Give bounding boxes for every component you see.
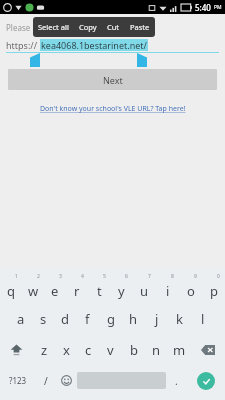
- button[interactable]: 7: [133, 274, 156, 304]
- button[interactable]: b: [122, 334, 145, 365]
- button[interactable]: Paste: [125, 18, 155, 36]
- staticText: Select all: [38, 22, 69, 32]
- staticText: q: [7, 282, 15, 300]
- button[interactable]: Shift: [0, 334, 33, 365]
- button[interactable]: Don't know your school's VLE URL? Tap he…: [38, 102, 188, 116]
- staticText: Please: [6, 22, 31, 33]
- staticText: t: [97, 282, 102, 300]
- staticText: l: [201, 310, 205, 328]
- staticText: Paste: [130, 22, 150, 32]
- staticText: a: [17, 310, 25, 328]
- staticText: z: [41, 341, 48, 359]
- staticText: v: [107, 341, 114, 359]
- staticText: https://: [6, 39, 38, 51]
- button[interactable]: h: [122, 304, 145, 334]
- staticText: 9: [194, 273, 197, 280]
- staticText: u: [140, 282, 149, 300]
- staticText: 3: [59, 273, 62, 280]
- staticText: w: [28, 282, 39, 300]
- button[interactable]: Select all: [33, 18, 74, 36]
- staticText: kea4068.1bestarinet.net/: [41, 39, 147, 51]
- staticText: Don't know your school's VLE URL? Tap he…: [40, 104, 186, 114]
- button[interactable]: c: [77, 334, 99, 365]
- button[interactable]: a: [10, 304, 32, 334]
- button[interactable]: Enter: [197, 372, 215, 390]
- staticText: n: [152, 341, 161, 359]
- button[interactable]: z: [33, 334, 55, 365]
- button[interactable]: d: [54, 304, 76, 334]
- button[interactable]: f: [76, 304, 99, 334]
- staticText: i: [166, 282, 170, 300]
- button[interactable]: l: [191, 304, 214, 334]
- staticText: 5: [103, 273, 106, 280]
- staticText: y: [118, 282, 125, 300]
- button[interactable]: n: [145, 334, 168, 365]
- button[interactable]: Backspace: [191, 334, 225, 365]
- button[interactable]: x: [55, 334, 77, 365]
- staticText: 8: [171, 273, 174, 280]
- button[interactable]: 4: [66, 274, 88, 304]
- button[interactable]: s: [32, 304, 54, 334]
- button[interactable]: 9: [179, 274, 202, 304]
- staticText: o: [187, 282, 195, 300]
- staticText: x: [63, 341, 70, 359]
- button[interactable]: Copy: [74, 18, 102, 36]
- button[interactable]: 2: [22, 274, 44, 304]
- button[interactable]: 3: [44, 274, 66, 304]
- button[interactable]: g: [99, 304, 122, 334]
- staticText: Cut: [107, 22, 120, 32]
- staticText: .: [175, 374, 178, 388]
- button[interactable]: Emoji: [56, 365, 77, 396]
- staticText: k: [176, 310, 183, 328]
- staticText: f: [85, 310, 90, 328]
- staticText: Next: [103, 74, 123, 86]
- button[interactable]: 5: [88, 274, 110, 304]
- staticText: g: [107, 310, 115, 328]
- button[interactable]: k: [168, 304, 191, 334]
- staticText: e: [51, 282, 59, 300]
- button[interactable]: m: [168, 334, 191, 365]
- button[interactable]: .: [166, 365, 187, 396]
- staticText: Copy: [79, 22, 97, 32]
- button[interactable]: ?123: [0, 365, 35, 396]
- staticText: c: [85, 341, 92, 359]
- staticText: /: [44, 374, 48, 388]
- staticText: h: [129, 310, 138, 328]
- staticText: 5:40: [195, 2, 211, 13]
- button[interactable]: 8: [156, 274, 179, 304]
- staticText: PM: [214, 4, 222, 11]
- staticText: 0: [217, 273, 220, 280]
- button[interactable]: v: [99, 334, 122, 365]
- button[interactable]: 1: [0, 274, 22, 304]
- staticText: r: [74, 282, 80, 300]
- button[interactable]: /: [35, 365, 56, 396]
- button[interactable]: Next: [8, 69, 217, 90]
- staticText: 6: [125, 273, 128, 280]
- staticText: 2: [37, 273, 40, 280]
- staticText: m: [173, 341, 186, 359]
- staticText: 4: [81, 273, 84, 280]
- button[interactable]: 6: [110, 274, 133, 304]
- staticText: p: [210, 282, 218, 300]
- staticText: d: [61, 310, 69, 328]
- staticText: 7: [148, 273, 151, 280]
- staticText: s: [40, 310, 47, 328]
- staticText: 1: [15, 273, 18, 280]
- button[interactable]: 0: [202, 274, 225, 304]
- staticText: j: [155, 310, 159, 328]
- button[interactable]: j: [145, 304, 168, 334]
- staticText: ?123: [9, 375, 27, 386]
- staticText: b: [130, 341, 138, 359]
- button[interactable]: Cut: [102, 18, 125, 36]
